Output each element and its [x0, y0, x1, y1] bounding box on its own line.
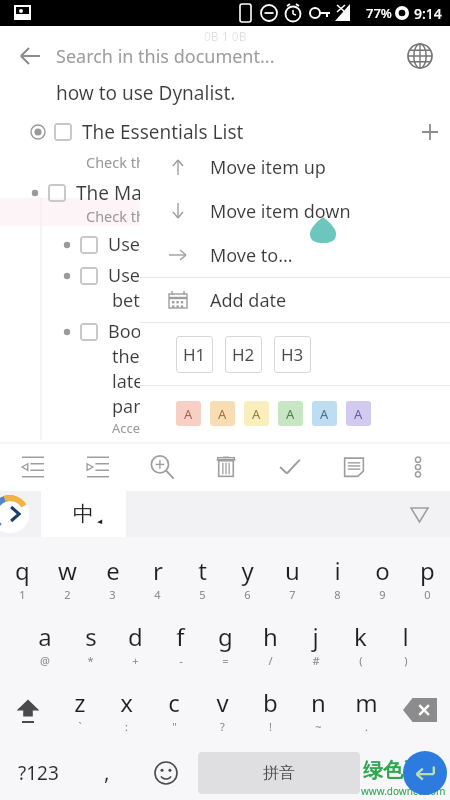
button[interactable]: H2 — [225, 336, 262, 373]
staticText: j — [312, 620, 319, 653]
staticText: 中 — [73, 501, 94, 527]
button[interactable]: k — [338, 615, 383, 673]
button[interactable]: Done — [258, 443, 322, 491]
button[interactable]: Use — [0, 263, 450, 288]
button[interactable]: Delete — [194, 443, 258, 491]
button[interactable]: Back — [6, 32, 54, 80]
button[interactable]: c — [150, 681, 198, 739]
staticText: later — [112, 369, 151, 394]
button[interactable]: H1 — [176, 336, 213, 373]
button[interactable]: u — [270, 549, 315, 607]
button[interactable]: 拼音 — [198, 752, 360, 794]
staticText: Check thi — [86, 206, 149, 226]
button[interactable]: n — [294, 681, 342, 739]
button[interactable]: g — [203, 615, 248, 673]
button[interactable]: Color 3 — [278, 401, 303, 426]
staticText: h — [263, 620, 278, 653]
button[interactable]: s — [68, 615, 113, 673]
button[interactable]: H3 — [274, 336, 311, 373]
staticText: * — [87, 653, 94, 668]
button[interactable]: l — [383, 615, 428, 673]
staticText: Move item down — [210, 199, 351, 224]
button[interactable]: Outdent — [0, 443, 65, 491]
staticText: x — [120, 686, 133, 719]
staticText: z — [74, 686, 86, 719]
button[interactable] — [48, 184, 66, 202]
button[interactable]: w — [45, 549, 90, 607]
button[interactable]: Color 5 — [346, 401, 371, 426]
staticText: p — [420, 554, 435, 587]
button[interactable] — [80, 236, 98, 254]
button[interactable]: a — [22, 615, 68, 673]
staticText: = — [222, 653, 229, 668]
button[interactable]: Emoji — [138, 745, 194, 800]
staticText: 7 — [289, 587, 296, 602]
button[interactable]: p — [405, 549, 450, 607]
button[interactable]: The Max — [0, 180, 450, 206]
button[interactable]: Color 1 — [210, 401, 235, 426]
button[interactable]: e — [90, 549, 135, 607]
button[interactable]: f — [158, 615, 203, 673]
button[interactable]: r — [135, 549, 180, 607]
button[interactable]: 中 — [41, 491, 126, 537]
button[interactable]: i — [315, 549, 360, 607]
staticText: g — [218, 620, 233, 653]
button[interactable]: Move item down — [140, 189, 450, 233]
button[interactable]: z — [56, 681, 103, 739]
button[interactable]: More — [386, 443, 450, 491]
button[interactable]: t — [180, 549, 225, 607]
button[interactable]: Backspace — [390, 681, 450, 739]
staticText: Move item up — [210, 155, 326, 180]
button[interactable]: Collapse keyboard — [402, 497, 436, 531]
staticText: b — [263, 686, 278, 719]
button[interactable]: The Essentials List — [0, 112, 450, 152]
staticText: i — [334, 554, 341, 587]
staticText: w — [58, 554, 77, 587]
button[interactable]: Enter — [403, 751, 447, 795]
staticText: 4 — [154, 587, 161, 602]
staticText: ? — [220, 719, 225, 734]
button[interactable]: Color 2 — [244, 401, 269, 426]
staticText: the s — [112, 344, 154, 369]
button[interactable]: Add item — [410, 112, 450, 152]
button[interactable]: Boo — [0, 319, 450, 344]
button[interactable]: Color 0 — [176, 401, 201, 426]
button[interactable]: q — [0, 549, 45, 607]
button[interactable] — [54, 123, 72, 141]
button[interactable]: Move item up — [140, 145, 450, 189]
button[interactable]: , — [76, 745, 138, 800]
staticText: ~ — [315, 719, 322, 734]
staticText: Acce — [112, 419, 141, 437]
button[interactable]: Color 4 — [312, 401, 337, 426]
button[interactable]: Indent — [65, 443, 130, 491]
staticText: 2 — [64, 587, 71, 602]
staticText: A — [218, 405, 227, 423]
button[interactable]: Add date — [140, 278, 450, 322]
button[interactable] — [80, 445, 98, 463]
button[interactable]: b — [246, 681, 294, 739]
staticText: u — [285, 554, 300, 587]
button[interactable]: Zoom in — [130, 443, 194, 491]
button[interactable]: To i — [0, 441, 450, 466]
button[interactable]: Language — [398, 34, 442, 78]
button[interactable] — [80, 267, 98, 285]
button[interactable]: Note — [322, 443, 386, 491]
button[interactable]: m — [342, 681, 390, 739]
button[interactable] — [80, 323, 98, 341]
button[interactable]: x — [103, 681, 150, 739]
staticText: H3 — [281, 343, 304, 366]
button[interactable]: ?123 — [0, 745, 76, 800]
button[interactable]: Use — [0, 232, 450, 257]
button[interactable]: h — [248, 615, 293, 673]
staticText: A — [354, 405, 363, 423]
button[interactable]: d — [113, 615, 158, 673]
button[interactable]: Shift — [0, 681, 56, 739]
button[interactable]: o — [360, 549, 405, 607]
staticText: Search in this document... — [56, 44, 275, 69]
staticText: 9:14 — [414, 4, 442, 23]
staticText: 0B 1 0B — [204, 28, 247, 44]
button[interactable]: j — [293, 615, 338, 673]
button[interactable]: y — [225, 549, 270, 607]
button[interactable]: Move to... — [140, 233, 450, 277]
button[interactable]: v — [198, 681, 246, 739]
